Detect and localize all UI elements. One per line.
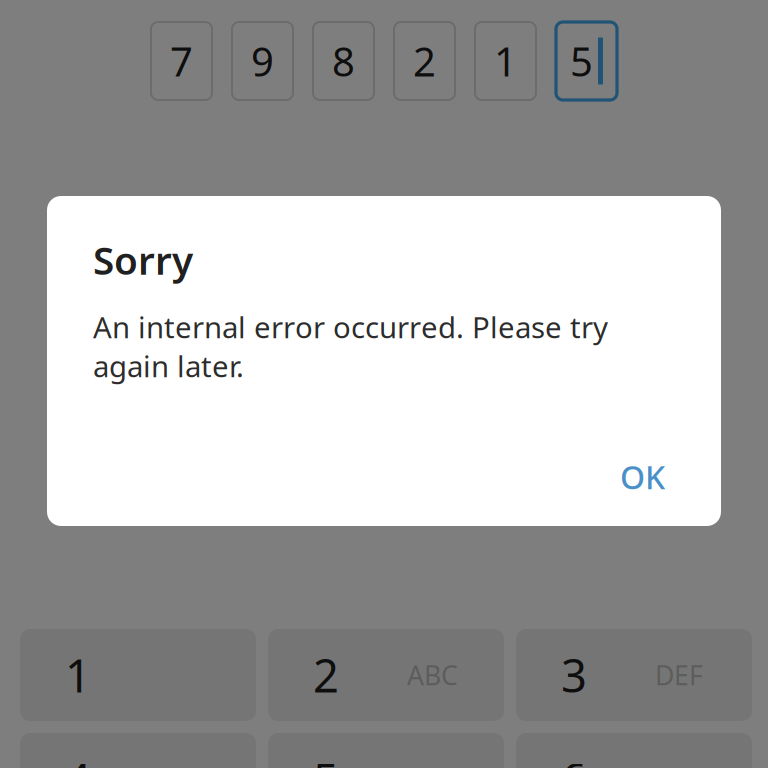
button[interactable]: PIN digit 1 <box>475 22 536 100</box>
button[interactable]: OK <box>602 443 683 510</box>
button[interactable]: PIN digit 9 <box>232 22 293 100</box>
button[interactable]: 4 <box>20 733 256 768</box>
staticText: An internal error occurred. Please try a… <box>93 307 608 385</box>
staticText: 1 <box>494 34 517 87</box>
button[interactable]: PIN digit 2 <box>394 22 455 100</box>
staticText: 5 <box>313 749 339 768</box>
staticText: 4 <box>65 749 91 768</box>
staticText: 5 <box>570 34 593 87</box>
button[interactable]: 5 <box>268 733 504 768</box>
button[interactable]: 2 <box>268 629 504 721</box>
staticText: 2 <box>413 34 436 87</box>
staticText: 2 <box>313 645 339 705</box>
button[interactable]: 3 <box>516 629 752 721</box>
staticText: 3 <box>561 645 587 705</box>
staticText: Sorry <box>93 234 193 285</box>
staticText: 1 <box>65 645 91 705</box>
staticText: 8 <box>332 34 355 87</box>
button[interactable]: PIN digit 7 <box>151 22 212 100</box>
staticText: 9 <box>251 34 274 87</box>
button[interactable]: 6 <box>516 733 752 768</box>
button[interactable]: PIN digit 5, editing <box>556 22 617 100</box>
button[interactable]: PIN digit 8 <box>313 22 374 100</box>
staticText: DEF <box>655 657 703 693</box>
button[interactable]: 1 <box>20 629 256 721</box>
staticText: ABC <box>407 657 458 693</box>
staticText: 7 <box>170 34 193 87</box>
staticText: OK <box>620 455 665 498</box>
staticText: 6 <box>561 749 587 768</box>
